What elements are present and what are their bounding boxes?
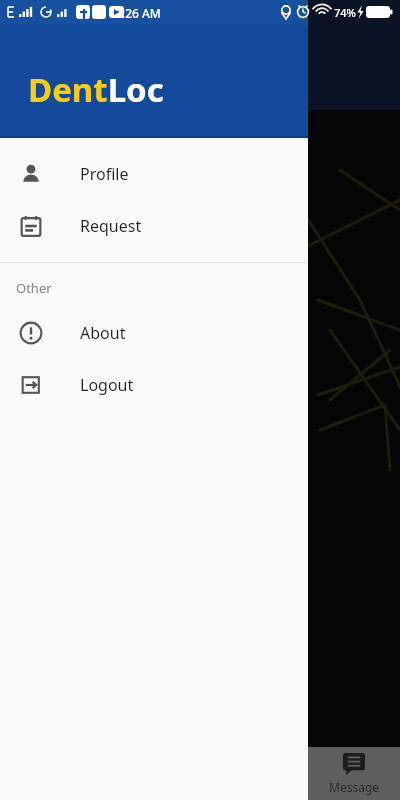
button[interactable]: Request [0,200,308,252]
staticText: Logout [80,374,134,396]
staticText: Other [16,279,52,297]
staticText: Profile [80,163,129,185]
button[interactable]: Message [308,747,400,800]
staticText: DentLoc [28,67,164,112]
button[interactable]: About [0,307,308,359]
staticText: Message [329,779,380,795]
staticText: About [80,322,126,344]
staticText: Request [80,215,142,237]
staticText: 7:26 AM [115,5,161,21]
staticText: 74% [334,5,356,20]
button[interactable]: Profile [0,148,308,200]
button[interactable]: Logout [0,359,308,411]
